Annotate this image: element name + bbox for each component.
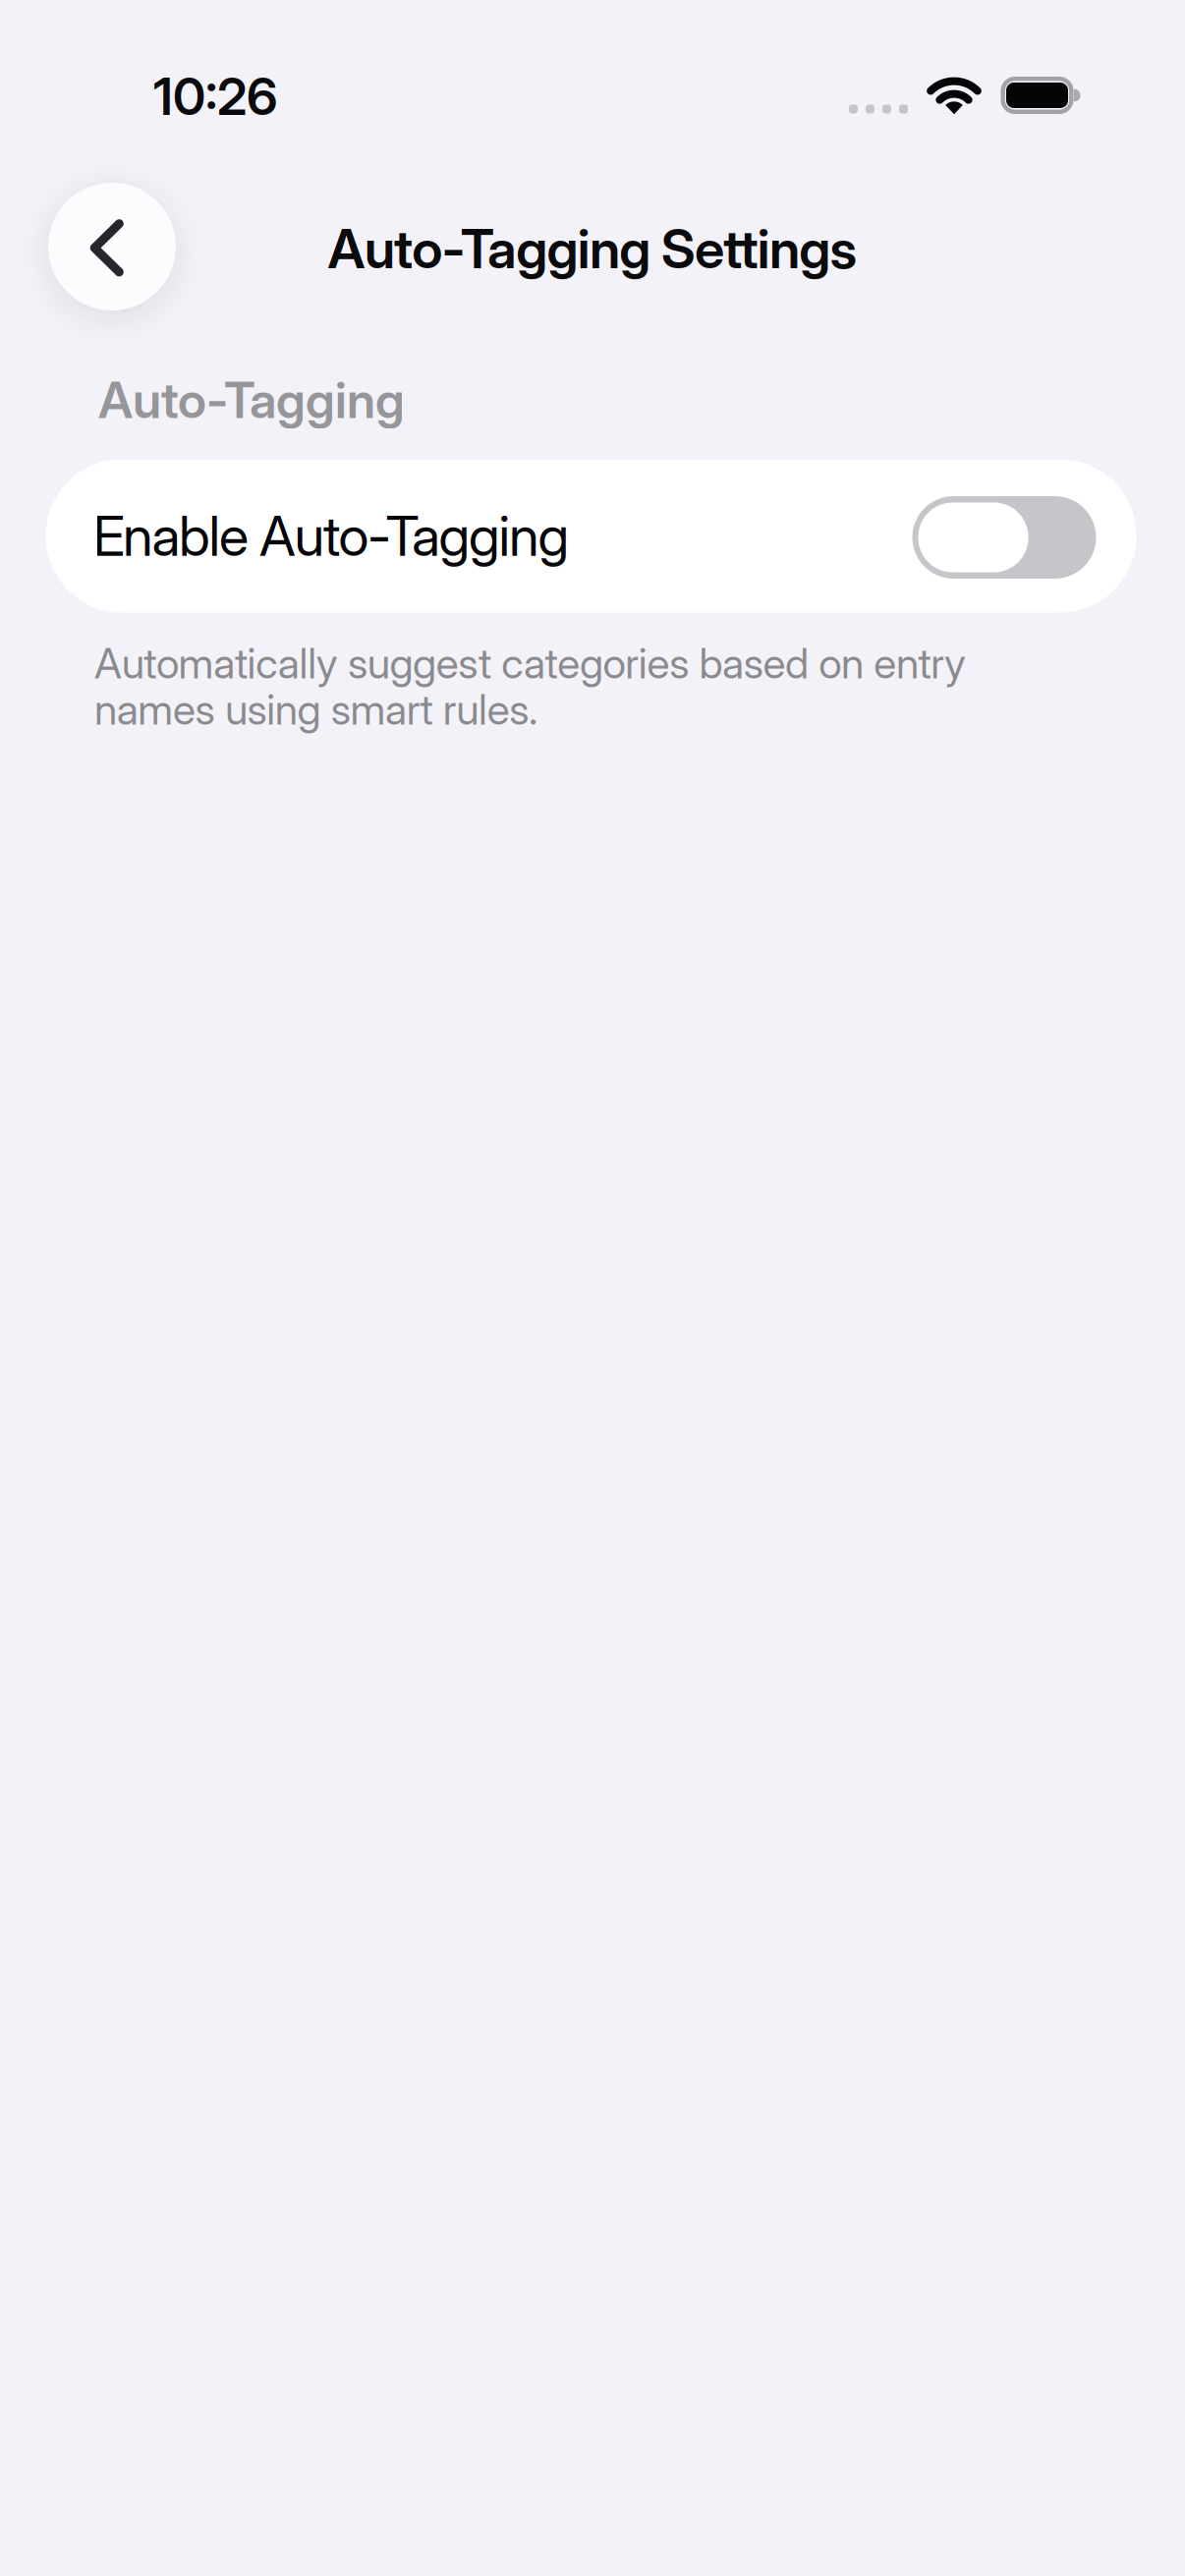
staticText: names using smart rules. [94,685,537,734]
button[interactable]: Back [48,183,176,310]
staticText: Auto-Tagging [98,370,405,429]
button[interactable]: Enable Auto-Tagging [46,459,1136,613]
staticText: Automatically suggest categories based o… [94,638,966,688]
staticText: 10:26 [153,66,278,126]
staticText: Enable Auto-Tagging [93,504,569,568]
staticText: Auto-Tagging Settings [328,217,857,280]
